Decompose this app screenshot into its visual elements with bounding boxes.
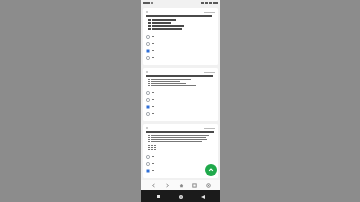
button[interactable] xyxy=(143,124,218,178)
button[interactable] xyxy=(146,110,215,117)
button[interactable]: Back xyxy=(198,192,207,201)
button[interactable]: Home xyxy=(176,192,185,201)
button[interactable] xyxy=(143,8,218,65)
button[interactable] xyxy=(146,40,215,47)
button[interactable]: Recents xyxy=(154,192,163,201)
button[interactable] xyxy=(146,103,215,110)
button[interactable] xyxy=(143,68,218,121)
button[interactable]: Scroll to top xyxy=(205,164,217,176)
button[interactable]: Forward xyxy=(163,181,171,189)
button[interactable] xyxy=(146,153,215,160)
button[interactable] xyxy=(146,89,215,96)
button[interactable] xyxy=(146,167,215,174)
button[interactable] xyxy=(146,54,215,61)
button[interactable] xyxy=(146,47,215,54)
button[interactable]: Home xyxy=(177,181,185,189)
button[interactable]: Tabs xyxy=(190,181,198,189)
button[interactable] xyxy=(146,33,215,40)
button[interactable] xyxy=(146,96,215,103)
button[interactable] xyxy=(146,160,215,167)
button[interactable]: Settings xyxy=(204,181,212,189)
button[interactable]: Back xyxy=(149,181,157,189)
